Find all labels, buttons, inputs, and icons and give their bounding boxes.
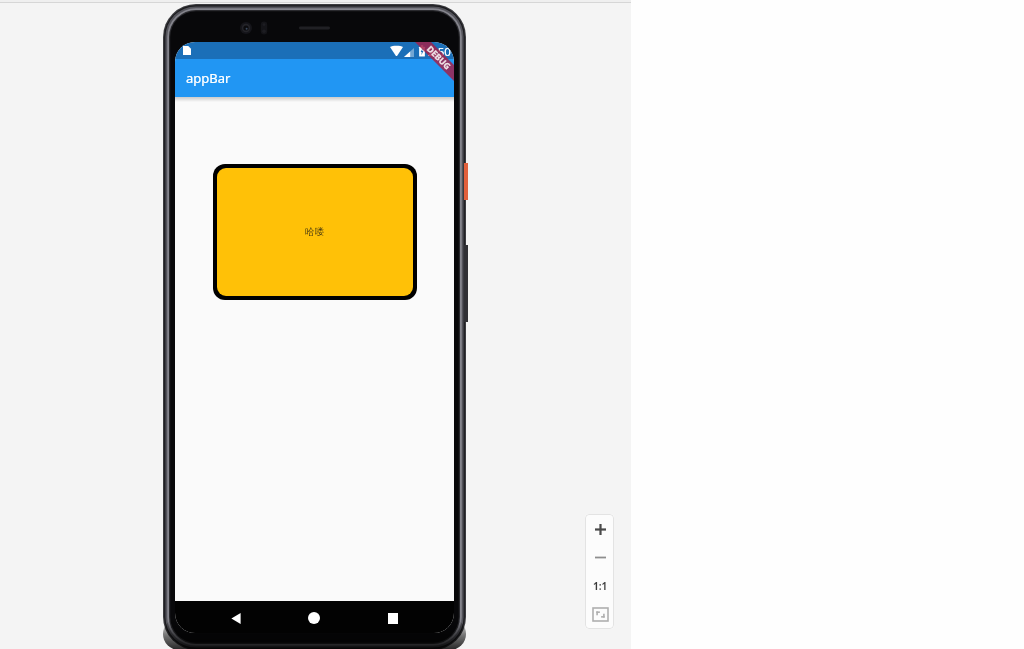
button[interactable]: Home bbox=[291, 601, 337, 633]
button[interactable]: Recent apps bbox=[370, 601, 416, 633]
button[interactable]: Zoom out bbox=[587, 544, 613, 570]
button[interactable]: Fit to screen bbox=[587, 601, 613, 627]
button[interactable]: 1:1 bbox=[587, 573, 613, 599]
staticText: DEBUG bbox=[424, 43, 454, 73]
button[interactable]: Zoom in bbox=[587, 516, 613, 542]
staticText: appBar bbox=[186, 69, 231, 87]
button[interactable]: Back bbox=[213, 601, 259, 633]
staticText: 哈喽 bbox=[305, 226, 325, 238]
staticText: 2:50 bbox=[428, 44, 451, 60]
button[interactable]: 哈喽 bbox=[217, 168, 413, 296]
staticText: 1:1 bbox=[593, 579, 608, 593]
